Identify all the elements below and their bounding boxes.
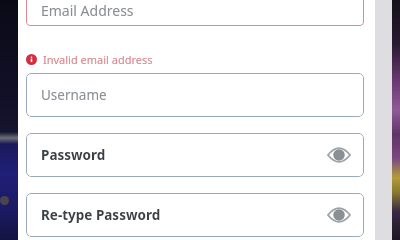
staticText: Password — [41, 146, 106, 164]
button[interactable]: Re-type Password — [26, 193, 364, 237]
button[interactable]: Username — [26, 73, 364, 117]
button[interactable]: Show password — [326, 202, 352, 228]
staticText: Username — [41, 86, 107, 104]
staticText: Invalid email address — [43, 52, 153, 66]
staticText: Email Address — [41, 1, 134, 20]
button[interactable]: Show password — [326, 142, 352, 168]
button[interactable]: Password — [26, 133, 364, 177]
button[interactable]: Email Address — [26, 0, 364, 26]
staticText: Re-type Password — [41, 206, 161, 224]
